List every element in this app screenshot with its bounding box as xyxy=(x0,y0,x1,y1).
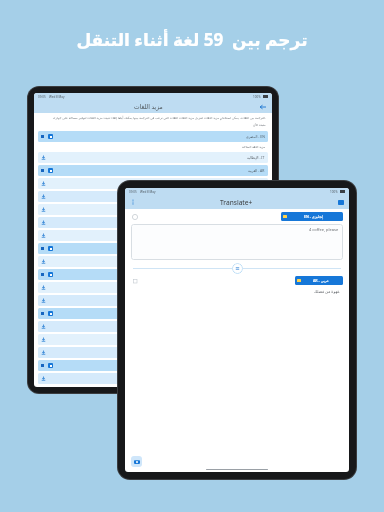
button[interactable]: الفرنسية - FR xyxy=(38,204,268,215)
staticText: ترجم بين 59 لغة أثناء التنقل xyxy=(76,28,308,51)
button[interactable]: History xyxy=(131,213,139,221)
button[interactable]: البرتغالية - PT xyxy=(38,217,268,228)
staticText: البرتغالية - PT xyxy=(245,220,265,225)
button[interactable]: الإيطالية - IT xyxy=(38,152,268,163)
button[interactable]: Menu xyxy=(129,198,137,206)
button[interactable]: الفيتنامية - VI xyxy=(38,360,268,371)
button[interactable]: العربية - AR xyxy=(38,165,268,176)
button[interactable]: الروسية - RU xyxy=(38,230,268,241)
staticText: 100% xyxy=(253,95,261,99)
staticText: AR - عربي xyxy=(313,278,329,283)
staticText: 09:05 xyxy=(129,190,137,194)
button[interactable]: Back xyxy=(258,102,267,111)
button[interactable]: الألمانية - DE xyxy=(38,178,268,189)
staticText: 100% xyxy=(330,190,338,194)
staticText: Wed 8 May xyxy=(49,95,65,99)
button[interactable]: التايلاندية - TH xyxy=(38,347,268,358)
button[interactable]: Copy xyxy=(131,277,139,285)
button[interactable]: اليابانية - JA xyxy=(38,282,268,293)
staticText: مزيد اللغة المتاحة xyxy=(242,145,266,149)
staticText: مثبت الآن xyxy=(253,123,266,127)
button[interactable]: 4 coffee, please xyxy=(131,224,343,260)
staticText: الهندية - HI xyxy=(249,259,265,264)
button[interactable]: الهندية - HI xyxy=(38,256,268,267)
staticText: 09:05 xyxy=(38,95,46,99)
button[interactable]: المصري - EN xyxy=(38,131,268,142)
button[interactable]: Camera translate xyxy=(131,456,142,467)
staticText: Wed 8 May xyxy=(140,190,156,194)
button[interactable]: الكورية - KO xyxy=(38,295,268,306)
button[interactable]: السويدية - SV xyxy=(38,321,268,332)
button[interactable]: AR - عربي xyxy=(295,276,343,285)
button[interactable]: EN - إنجليزي xyxy=(281,212,343,221)
button[interactable]: التركية - TR xyxy=(38,243,268,254)
staticText: قهوة من فضلك. xyxy=(314,289,341,294)
button[interactable]: Swap languages xyxy=(232,263,243,274)
button[interactable]: اليونانية - EL xyxy=(38,373,268,384)
staticText: العربية - AR xyxy=(248,168,265,173)
button[interactable]: البولندية - PL xyxy=(38,334,268,345)
staticText: Translate+ xyxy=(220,198,253,207)
button[interactable]: الهولندية - NL xyxy=(38,308,268,319)
staticText: EN - إنجليزي xyxy=(304,214,324,219)
button[interactable]: Languages xyxy=(337,198,345,206)
staticText: مزيد اللغات xyxy=(134,103,163,111)
staticText: الترجمة بين اللغات، يمكن استخدام مزيد ال… xyxy=(40,116,266,120)
button[interactable]: الصينية - ZH xyxy=(38,269,268,280)
staticText: الإيطالية - IT xyxy=(247,155,265,160)
staticText: المصري - EN xyxy=(246,134,265,139)
staticText: الفرنسية - FR xyxy=(245,207,265,212)
button[interactable]: الإسبانية - ES xyxy=(38,191,268,202)
staticText: 4 coffee, please xyxy=(309,227,339,232)
